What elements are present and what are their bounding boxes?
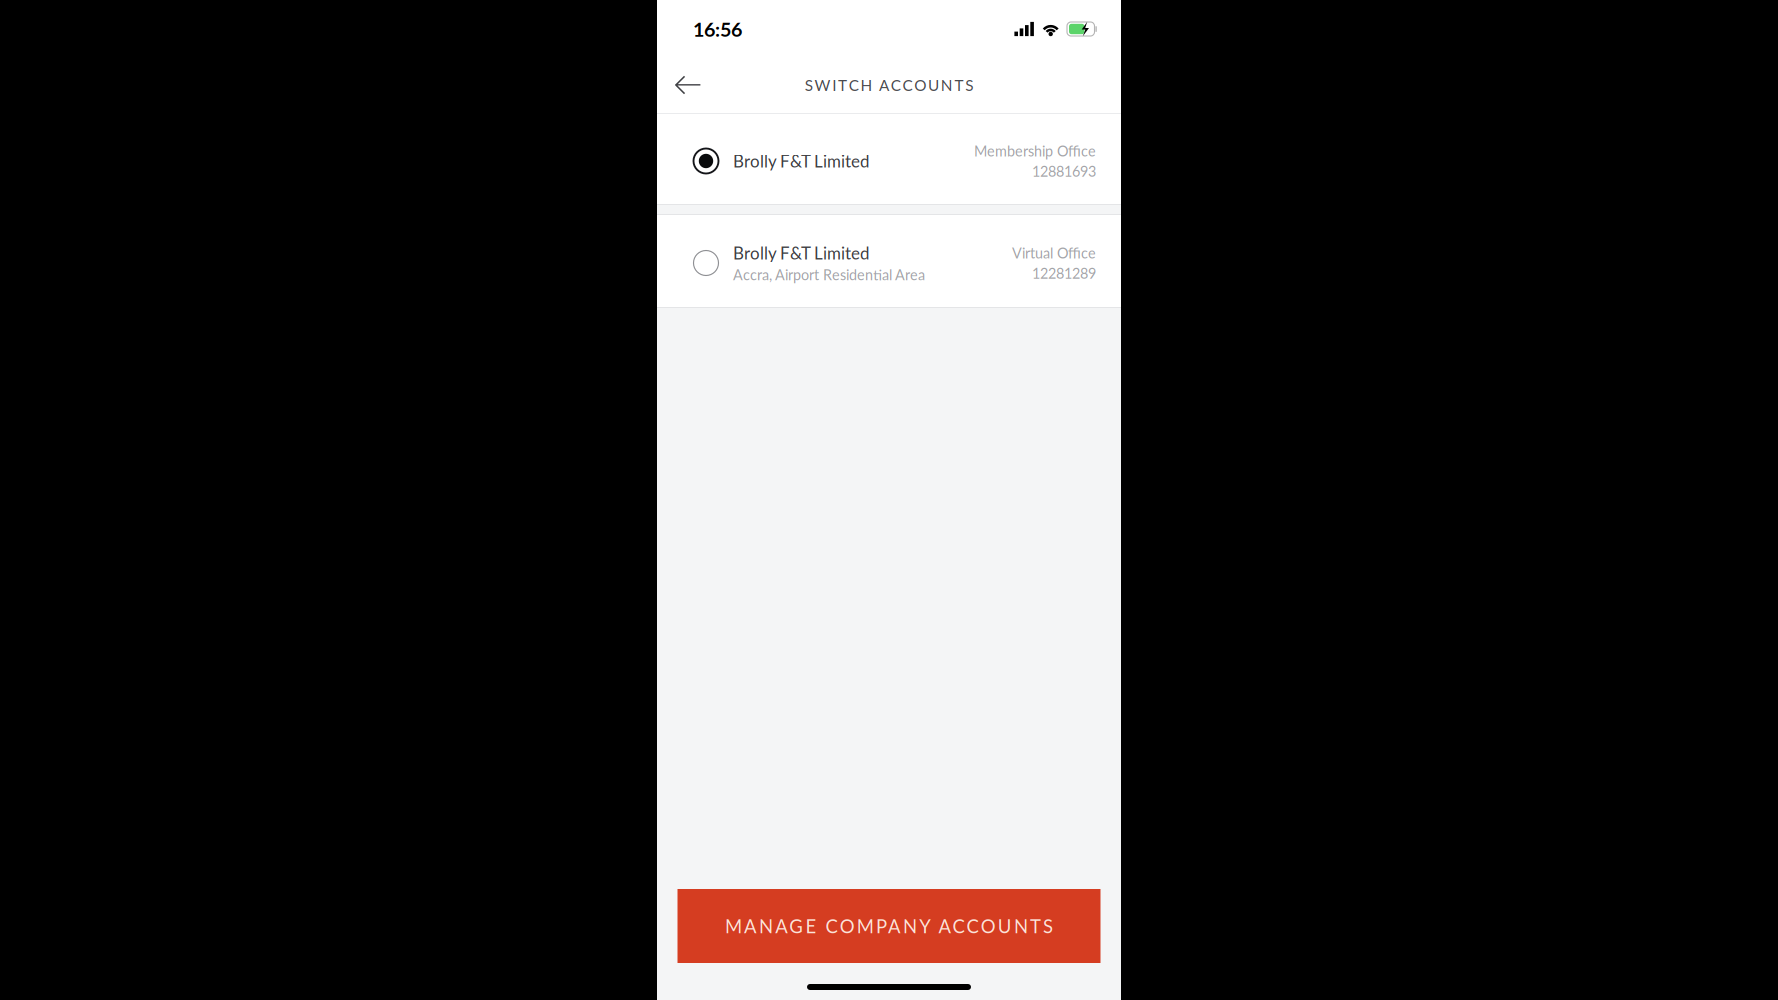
staticText: 12281289 bbox=[1032, 264, 1096, 282]
staticText: 16:56 bbox=[693, 17, 742, 41]
staticText: Virtual Office bbox=[1012, 244, 1096, 261]
staticText: 12881693 bbox=[1032, 162, 1096, 180]
staticText: Brolly F&T Limited bbox=[733, 151, 869, 171]
button[interactable]: Brolly F&T Limited bbox=[657, 114, 1121, 204]
staticText: Membership Office bbox=[974, 142, 1096, 159]
button[interactable]: MANAGE COMPANY ACCOUNTS bbox=[677, 889, 1100, 963]
staticText: MANAGE COMPANY ACCOUNTS bbox=[725, 915, 1053, 937]
staticText: Brolly F&T Limited bbox=[733, 243, 869, 263]
staticText: Accra, Airport Residential Area bbox=[733, 266, 925, 283]
button[interactable]: Brolly F&T Limited bbox=[657, 215, 1121, 307]
button[interactable]: Back bbox=[662, 61, 712, 109]
staticText: SWITCH ACCOUNTS bbox=[805, 76, 973, 94]
